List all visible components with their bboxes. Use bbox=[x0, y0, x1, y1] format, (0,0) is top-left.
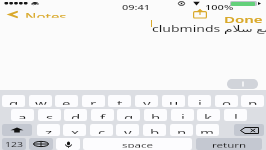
staticText: space bbox=[122, 140, 154, 148]
button[interactable]: return bbox=[196, 138, 262, 150]
staticText: e bbox=[62, 97, 71, 105]
button[interactable]: s bbox=[38, 109, 61, 121]
button[interactable]: u bbox=[162, 95, 185, 107]
staticText: t bbox=[117, 97, 123, 105]
staticText: g bbox=[124, 111, 134, 119]
staticText: y bbox=[143, 97, 151, 105]
button[interactable]: r bbox=[82, 95, 105, 107]
button[interactable]: a bbox=[11, 109, 34, 121]
button[interactable]: o bbox=[215, 95, 238, 107]
staticText: c bbox=[98, 126, 106, 134]
button[interactable]: Notes bbox=[4, 8, 68, 20]
button[interactable]: v bbox=[116, 124, 139, 136]
button[interactable]: c bbox=[90, 124, 113, 136]
staticText: 09:41 bbox=[122, 3, 151, 12]
button[interactable]: f bbox=[91, 109, 114, 121]
staticText: z bbox=[45, 126, 53, 134]
staticText: a bbox=[18, 111, 27, 119]
button[interactable]: m bbox=[196, 124, 219, 136]
staticText: v bbox=[124, 126, 132, 134]
button[interactable]: g bbox=[117, 109, 140, 121]
staticText: l bbox=[234, 111, 238, 119]
staticText: r bbox=[90, 97, 97, 105]
staticText: h bbox=[151, 111, 161, 119]
staticText: 100% bbox=[205, 3, 234, 12]
button[interactable]: Done bbox=[224, 9, 263, 29]
button[interactable]: n bbox=[170, 124, 193, 136]
staticText: n bbox=[177, 126, 187, 134]
staticText: d bbox=[71, 111, 81, 119]
button[interactable]: x bbox=[63, 124, 86, 136]
staticText: f bbox=[100, 111, 106, 119]
button[interactable]: space bbox=[83, 138, 192, 150]
button[interactable]: z bbox=[37, 124, 60, 136]
staticText: w bbox=[35, 97, 47, 105]
staticText: p bbox=[248, 97, 258, 105]
button[interactable]: b bbox=[143, 124, 166, 136]
button[interactable]: p bbox=[241, 95, 264, 107]
button[interactable]: Backspace bbox=[234, 124, 264, 136]
button[interactable]: e bbox=[55, 95, 78, 107]
staticText: m bbox=[200, 126, 215, 134]
button[interactable]: 123 bbox=[2, 138, 26, 150]
staticText: j bbox=[181, 111, 185, 119]
button[interactable]: q bbox=[2, 95, 25, 107]
button[interactable]: Hide keyboard bbox=[227, 79, 258, 89]
staticText: k bbox=[204, 111, 213, 119]
button[interactable]: l bbox=[224, 109, 247, 121]
staticText: u bbox=[169, 97, 179, 105]
button[interactable]: k bbox=[197, 109, 220, 121]
button[interactable]: y bbox=[135, 95, 158, 107]
button[interactable]: Next keyboard bbox=[29, 138, 53, 150]
button[interactable]: t bbox=[108, 95, 131, 107]
staticText: b bbox=[150, 126, 160, 134]
button[interactable]: Shift bbox=[2, 124, 32, 136]
button[interactable]: h bbox=[144, 109, 167, 121]
button[interactable]: Share bbox=[191, 7, 209, 20]
staticText: q bbox=[9, 97, 19, 105]
staticText: s bbox=[46, 111, 54, 119]
staticText: Notes bbox=[25, 10, 67, 18]
button[interactable]: d bbox=[64, 109, 87, 121]
staticText: return bbox=[212, 140, 247, 148]
staticText: 123 bbox=[5, 140, 24, 148]
button[interactable]: i bbox=[188, 95, 211, 107]
button[interactable]: j bbox=[171, 109, 194, 121]
button[interactable]: Dictation bbox=[56, 138, 80, 150]
staticText: x bbox=[71, 126, 79, 134]
staticText: i bbox=[198, 97, 202, 105]
staticText: clubminds مع سلام bbox=[152, 23, 266, 34]
staticText: o bbox=[222, 97, 232, 105]
button[interactable]: w bbox=[29, 95, 52, 107]
